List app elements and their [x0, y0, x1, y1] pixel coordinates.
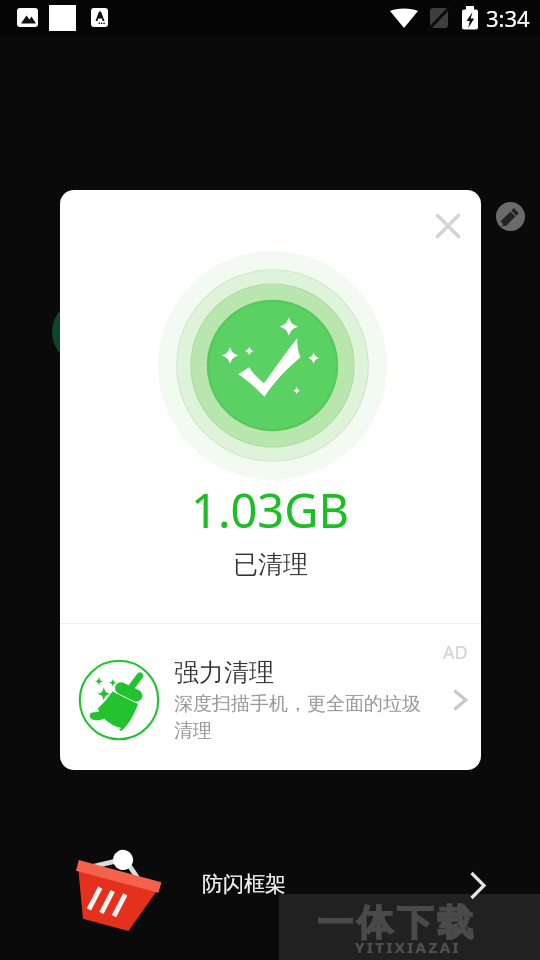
button[interactable]: Close	[424, 202, 472, 250]
button[interactable]: 防闪框架	[0, 828, 540, 944]
staticText: 已清理	[233, 549, 308, 580]
staticText: 深度扫描手机，更全面的垃圾清理	[174, 692, 426, 743]
button[interactable]: 强力清理	[60, 624, 481, 770]
button[interactable]: Edit	[496, 202, 525, 231]
staticText: 1.03GB	[191, 478, 350, 542]
staticText: 防闪框架	[202, 871, 286, 897]
staticText: 3:34	[486, 3, 530, 33]
staticText: 强力清理	[174, 657, 274, 688]
staticText: 一体下载	[315, 900, 475, 945]
staticText: AD	[443, 640, 468, 665]
staticText: YITIXIAZAI	[355, 937, 461, 957]
